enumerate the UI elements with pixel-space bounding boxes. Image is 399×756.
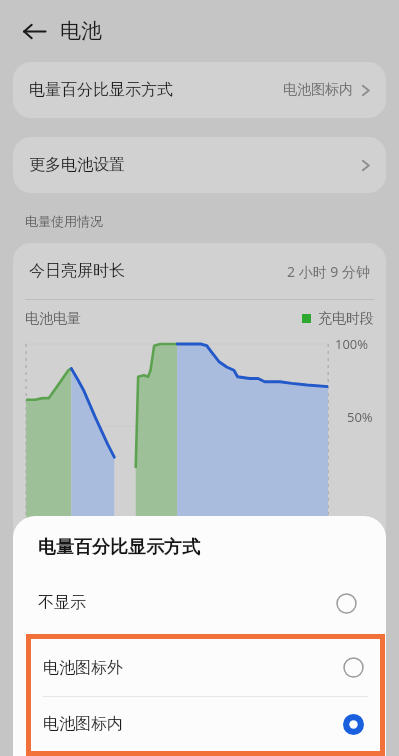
staticText: 2 小时 9 分钟	[287, 262, 370, 281]
button[interactable]: 电量百分比显示方式	[13, 62, 386, 118]
staticText: 不显示	[38, 593, 86, 613]
staticText: 电量百分比显示方式	[29, 80, 173, 100]
staticText: 电量使用情况	[25, 213, 103, 229]
staticText: 电池图标外	[43, 658, 123, 678]
staticText: 电池图标内	[283, 81, 353, 99]
staticText: 100%	[335, 335, 369, 353]
staticText: 充电时段	[318, 310, 374, 328]
button[interactable]: 今日亮屏时长	[13, 243, 386, 299]
button[interactable]: 电池图标外	[31, 639, 380, 696]
staticText: 电量百分比显示方式	[38, 536, 200, 559]
staticText: 电池电量	[25, 310, 81, 328]
staticText: 50%	[347, 408, 373, 426]
button[interactable]: 电池图标内	[31, 697, 380, 751]
button[interactable]: Back	[16, 13, 52, 49]
staticText: 电池	[60, 18, 102, 44]
staticText: 更多电池设置	[29, 155, 125, 175]
staticText: 电池图标内	[43, 714, 123, 734]
button[interactable]: 不显示	[13, 581, 386, 625]
button[interactable]: 更多电池设置	[13, 137, 386, 193]
staticText: 今日亮屏时长	[29, 261, 125, 281]
